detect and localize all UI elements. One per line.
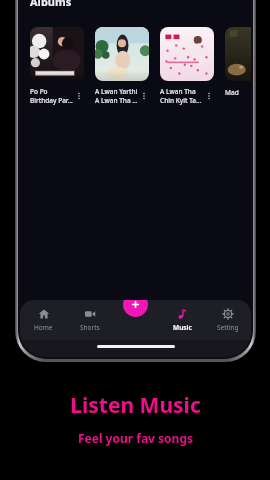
button[interactable]: More options [74, 91, 84, 101]
staticText: Music [173, 323, 192, 332]
button[interactable]: Setting [205, 300, 251, 340]
button[interactable]: More options [139, 91, 149, 101]
button[interactable]: More options [204, 91, 214, 101]
staticText: Shorts [80, 323, 100, 332]
staticText: A Lwan Yarthi [95, 87, 138, 96]
staticText: Po Po [30, 87, 48, 96]
button[interactable]: A Lwan Yarthi [95, 27, 149, 105]
button[interactable]: Po Po [30, 27, 84, 105]
staticText: Mad [225, 88, 239, 97]
button[interactable]: Add [123, 300, 148, 317]
button[interactable] [225, 27, 251, 81]
staticText: Chin Kyit Ta… [160, 96, 202, 105]
button[interactable]: Shorts [67, 300, 113, 340]
staticText: Home [34, 323, 53, 332]
staticText: Albums [30, 0, 72, 9]
button[interactable]: Music [159, 300, 205, 340]
staticText: A Lwan Tha [160, 87, 196, 96]
staticText: Feel your fav songs [78, 430, 193, 446]
staticText: A Lwan Tha … [95, 96, 138, 105]
staticText: Birthday Par… [30, 96, 73, 105]
staticText: Setting [217, 323, 239, 332]
staticText: Listen Music [70, 391, 201, 420]
button[interactable]: Home [20, 300, 67, 340]
button[interactable]: A Lwan Tha [160, 27, 214, 105]
